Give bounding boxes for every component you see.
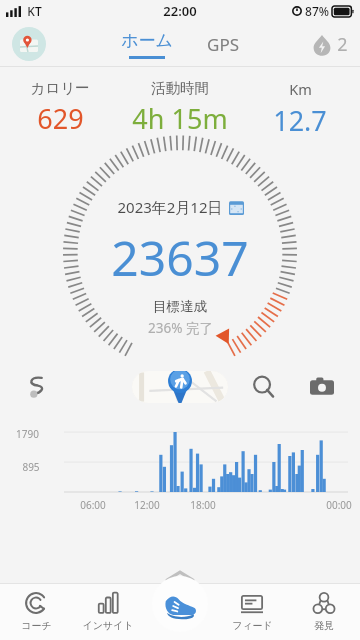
button[interactable]: Km <box>240 79 360 139</box>
button[interactable]: Search <box>246 369 282 405</box>
button[interactable]: インサイト <box>72 584 144 640</box>
staticText: Km <box>289 79 312 99</box>
button[interactable]: フィード <box>216 584 288 640</box>
button[interactable]: カロリー <box>0 79 120 137</box>
staticText: 発見 <box>314 619 334 632</box>
staticText: 18:00 <box>190 498 216 512</box>
staticText: 236% 完了 <box>148 319 213 337</box>
staticText: フィード <box>232 619 273 632</box>
button[interactable]: GPS <box>201 29 245 60</box>
staticText: コーチ <box>21 619 52 632</box>
button[interactable]: 活動時間 <box>120 79 240 137</box>
staticText: KT <box>27 3 42 19</box>
staticText: 06:00 <box>80 498 106 512</box>
staticText: インサイト <box>82 619 134 632</box>
button[interactable]: Map <box>12 27 46 61</box>
button[interactable]: Map route <box>132 371 228 403</box>
staticText: カロリー <box>30 79 90 97</box>
button[interactable]: 発見 <box>288 584 360 640</box>
button[interactable]: ホーム <box>115 30 179 59</box>
other: Streak <box>311 34 333 56</box>
staticText: 12.7 <box>273 102 327 139</box>
staticText: 87% <box>305 3 329 19</box>
staticText: 4h 15m <box>132 100 228 137</box>
staticText: 23637 <box>111 225 249 290</box>
staticText: 12:00 <box>134 498 160 512</box>
staticText: 目標達成 <box>153 298 207 315</box>
staticText: ホーム <box>121 30 173 51</box>
button[interactable]: 1790 <box>0 422 360 514</box>
button[interactable]: Camera <box>304 369 340 405</box>
staticText: 2 <box>337 32 348 57</box>
button[interactable]: Route <box>18 370 52 404</box>
button[interactable]: コーチ <box>0 584 72 640</box>
staticText: 22:00 <box>163 2 197 20</box>
staticText: GPS <box>207 33 239 56</box>
other: Calendar <box>229 200 244 215</box>
staticText: 629 <box>37 100 84 137</box>
button[interactable]: 2023年2月12日 <box>117 197 244 217</box>
button[interactable]: Streak <box>311 32 348 57</box>
staticText: 1790 <box>16 427 39 441</box>
staticText: 895 <box>22 460 40 474</box>
staticText: 活動時間 <box>151 79 209 97</box>
button[interactable]: Activity <box>152 576 208 632</box>
staticText: 00:00 <box>326 498 352 512</box>
staticText: 2023年2月12日 <box>117 197 223 217</box>
